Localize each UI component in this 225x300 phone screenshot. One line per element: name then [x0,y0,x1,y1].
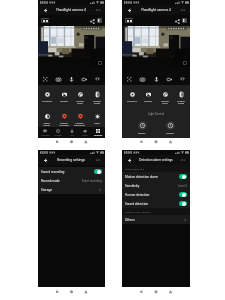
staticText: Sound detection [125,202,149,206]
button[interactable]: Motion Detection [72,113,87,127]
button[interactable]: Record [79,74,90,85]
button[interactable]: Fullscreen [97,18,102,23]
button[interactable]: Sound detection [122,199,190,208]
staticText: Timing [166,131,174,134]
button[interactable]: Gallery [140,91,155,102]
button[interactable]: Gallery [56,91,71,102]
button[interactable]: Others [122,215,190,224]
staticText: Motion Tracking [59,121,69,127]
button[interactable]: Motion detection alarm [122,172,190,181]
button[interactable]: Back [125,6,133,14]
button[interactable] [125,18,133,23]
button[interactable]: Talk [151,74,162,85]
staticText: Camera alarm settings [125,210,151,213]
button[interactable]: More [177,74,188,85]
staticText: Floodlight camera 4 [141,8,171,12]
button[interactable]: Playback [124,91,139,102]
staticText: Gallery [60,99,68,102]
button[interactable]: Cloud [79,129,91,137]
staticText: Yale [70,134,74,137]
staticText: Light [94,121,100,124]
button[interactable]: Back [125,156,133,164]
staticText: Playback [42,99,52,102]
staticText: Event recording [82,179,102,183]
staticText: Simple Mode [177,99,185,105]
button[interactable]: Simple Mode [173,91,188,105]
button[interactable]: Split view [40,74,51,85]
button[interactable]: Theme Color [72,91,87,105]
staticText: Human detection [125,193,150,197]
button[interactable]: More options [179,6,187,14]
staticText: Features [94,134,103,137]
button[interactable]: Simple Mode [89,91,104,105]
button[interactable]: Storage [38,185,105,194]
button[interactable]: Motion Tracking [56,113,71,127]
button[interactable]: Share [174,18,180,24]
staticText: Light Control [122,112,190,116]
staticText: Recording settings [57,158,85,162]
button[interactable]: Timing [161,121,179,134]
staticText: Message [41,134,50,137]
staticText: Simple Mode [93,99,101,105]
button[interactable]: Snapshot [137,74,148,85]
button[interactable]: More options [179,156,187,164]
button[interactable]: Yale [66,129,78,137]
button[interactable]: Detect [133,121,151,134]
staticText: Theme Color [76,99,84,105]
button[interactable]: Message [39,129,51,137]
button[interactable]: Snapshot [53,74,64,85]
button[interactable]: Sensitivity [122,181,190,190]
staticText: Floodlight camera 4 [56,8,86,12]
button[interactable]: More options [94,156,102,164]
button[interactable]: Theme Color [157,91,172,105]
button[interactable]: Back [41,6,49,14]
button[interactable]: Record [164,74,175,85]
button[interactable]: Back [41,156,49,164]
staticText: Doorbell [54,134,63,137]
button[interactable]: Features [92,129,104,137]
button[interactable] [41,18,49,23]
staticText: Motion detection [125,167,145,170]
button[interactable]: Human detection [122,190,190,199]
button[interactable]: Split view [124,74,135,85]
button[interactable]: Light [89,113,104,124]
staticText: Record mode [41,179,60,183]
staticText: Level 3 [178,184,187,188]
staticText: Motion Detection [74,121,85,127]
staticText: Sound recording [41,170,65,174]
staticText: Motion detection alarm [125,175,159,179]
staticText: Theme Color [161,99,169,105]
staticText: Detect [138,131,146,134]
button[interactable]: More [92,74,103,85]
button[interactable]: Talk [66,74,77,85]
staticText: Storage [41,188,52,192]
staticText: Gallery [144,99,152,102]
button[interactable]: Night Mode [39,113,54,127]
button[interactable]: Fullscreen [182,18,187,23]
staticText: Playback [127,99,137,102]
button[interactable]: Record mode [38,176,105,185]
staticText: Night Mode [43,121,50,127]
button[interactable]: Sound recording [38,167,105,176]
staticText: Cloud [82,134,88,137]
button[interactable]: Share [89,18,95,24]
staticText: Others [125,218,135,222]
button[interactable]: More options [94,6,102,14]
button[interactable]: Doorbell [52,129,64,137]
staticText: Sensitivity [125,184,140,188]
staticText: Detection alarm settings [139,158,173,162]
button[interactable]: Playback [39,91,54,102]
